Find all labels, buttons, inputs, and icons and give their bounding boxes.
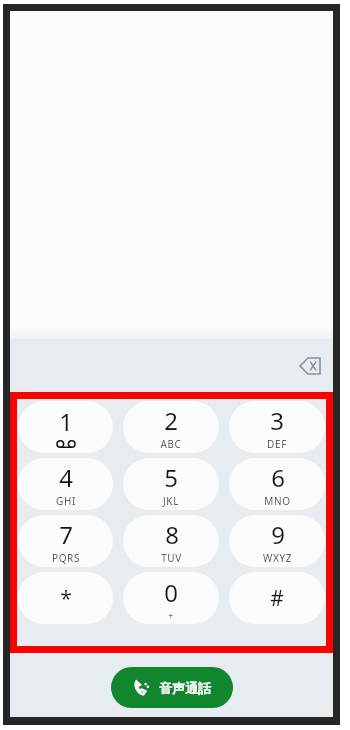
button[interactable]: 2 [123,401,219,453]
button[interactable]: 5 [123,458,219,510]
button[interactable]: * [18,572,113,624]
staticText: 9 [271,518,285,551]
staticText: 音声通話 [159,680,211,696]
button[interactable]: # [229,572,325,624]
button[interactable]: 6 [229,458,325,510]
staticText: ABC [160,437,182,451]
staticText: * [60,584,72,613]
staticText: 6 [271,461,285,494]
staticText: 7 [59,518,73,551]
staticText: 3 [270,404,284,437]
staticText: PQRS [52,551,80,565]
staticText: + [168,609,174,621]
button[interactable]: Backspace [293,349,327,383]
staticText: # [270,584,284,613]
staticText: 2 [164,404,178,437]
staticText: 5 [164,461,178,494]
staticText: GHI [56,494,76,508]
button[interactable]: 7 [18,515,113,567]
button[interactable]: 4 [18,458,113,510]
staticText: MNO [264,494,291,508]
staticText: 4 [59,461,73,494]
button[interactable]: 音声通話 [111,667,233,708]
button[interactable]: 1 [18,401,113,453]
button[interactable]: 8 [123,515,219,567]
staticText: 0 [164,576,178,609]
button[interactable]: 9 [229,515,325,567]
staticText: 1 [59,405,73,438]
button[interactable]: 3 [229,401,325,453]
button[interactable]: 0 [123,572,219,624]
staticText: DEF [267,437,287,451]
staticText: 8 [165,518,179,551]
staticText: WXYZ [263,551,292,565]
staticText: JKL [163,494,179,508]
staticText: TUV [161,551,182,565]
